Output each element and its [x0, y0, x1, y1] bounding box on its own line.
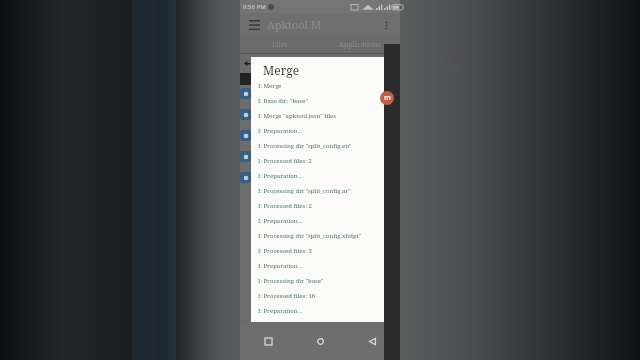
- staticText: I: Processed files: 2: [258, 157, 312, 165]
- staticText: I: Merge "apktool.json" files: [258, 112, 336, 120]
- staticText: I: Preparation...: [258, 262, 303, 270]
- button[interactable]: Open navigation drawer: [246, 17, 262, 33]
- staticText: I: Processed files: 2: [258, 202, 312, 210]
- staticText: I: Processed files: 16: [258, 292, 316, 300]
- staticText: Applications: [339, 40, 381, 50]
- button[interactable]: Home: [309, 330, 331, 352]
- other: Badge: [380, 91, 394, 105]
- staticText: Merge: [263, 62, 300, 78]
- staticText: I: Processed files: 3: [258, 247, 312, 255]
- staticText: I: Preparation...: [258, 127, 303, 135]
- staticText: Apktool M: [267, 17, 322, 32]
- button[interactable]: Files: [240, 36, 320, 53]
- staticText: I: Merge: [258, 82, 282, 90]
- button[interactable]: More options: [378, 17, 394, 33]
- button[interactable]: Recent apps: [257, 330, 279, 352]
- staticText: I: Preparation...: [258, 307, 303, 315]
- staticText: I: Processing dir "split_config.en": [258, 142, 352, 150]
- staticText: I: Base dir: "base": [258, 97, 308, 105]
- staticText: I: Preparation...: [258, 172, 303, 180]
- staticText: 9:56 PM: [243, 3, 266, 11]
- staticText: Files: [272, 40, 288, 50]
- staticText: I: Processing dir "split_config.xhdpi": [258, 232, 362, 240]
- staticText: m: [384, 93, 391, 103]
- button[interactable]: Back: [361, 330, 383, 352]
- staticText: I: Preparation...: [258, 217, 303, 225]
- button[interactable]: Applications: [320, 36, 400, 53]
- staticText: I: Processing dir "split_config.ar": [258, 187, 351, 195]
- staticText: I: Processing dir "base": [258, 277, 324, 285]
